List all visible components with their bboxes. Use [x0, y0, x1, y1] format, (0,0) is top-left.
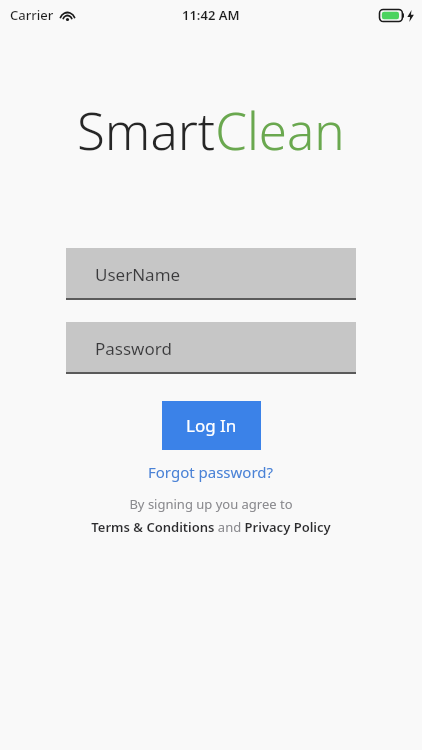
staticText: Terms & Conditions and Privacy Policy [91, 518, 331, 536]
staticText: Forgot password? [148, 462, 274, 482]
button[interactable]: Log In [162, 401, 261, 450]
staticText: UserName [95, 263, 181, 286]
staticText: Carrier [10, 6, 54, 24]
staticText: SmartClean [77, 95, 345, 164]
staticText: Password [95, 337, 172, 360]
staticText: By signing up you agree to [66, 495, 356, 513]
other: Wi-Fi signal [60, 9, 75, 21]
button[interactable]: Forgot password? [140, 459, 282, 485]
staticText: 11:42 AM [182, 6, 240, 24]
other: Battery charging [379, 9, 405, 22]
button[interactable]: UserName [66, 248, 356, 300]
button[interactable]: Terms & Conditions and Privacy Policy [66, 518, 356, 536]
staticText: Log In [186, 414, 237, 437]
other: Charging [407, 10, 414, 22]
button[interactable]: Password [66, 322, 356, 374]
